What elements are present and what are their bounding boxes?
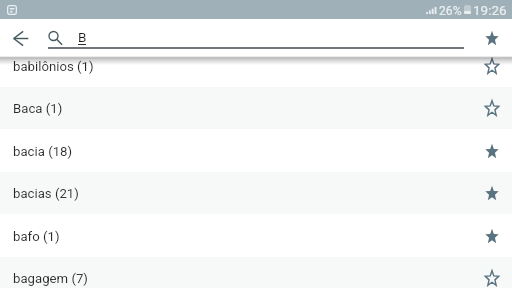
button[interactable]: Add to favourites <box>474 90 510 126</box>
button[interactable]: bafo (1) <box>0 215 512 257</box>
staticText: Baca (1) <box>13 101 63 116</box>
staticText: bafo (1) <box>13 229 60 244</box>
button[interactable]: Add to favourites <box>474 260 510 288</box>
button[interactable]: bacias (21) <box>0 172 512 214</box>
button[interactable]: babilônios (1) <box>0 45 512 87</box>
button[interactable]: Baca (1) <box>0 87 512 129</box>
staticText: babilônios (1) <box>13 59 94 74</box>
staticText: 19:26 <box>473 2 507 18</box>
button[interactable]: Add to favourites <box>474 48 510 84</box>
button[interactable]: Remove from favourites <box>474 218 510 254</box>
button[interactable]: Back <box>3 20 39 56</box>
staticText: B <box>78 29 87 45</box>
button[interactable]: Remove from favourites <box>474 175 510 211</box>
staticText: bacias (21) <box>13 186 79 201</box>
staticText: bagagem (7) <box>13 271 88 286</box>
button[interactable]: Remove from favourites <box>474 133 510 169</box>
button[interactable]: bacia (18) <box>0 130 512 172</box>
button[interactable]: Favourites <box>474 20 510 56</box>
button[interactable]: bagagem (7) <box>0 257 512 288</box>
staticText: bacia (18) <box>13 144 73 159</box>
staticText: 26% <box>439 4 462 18</box>
